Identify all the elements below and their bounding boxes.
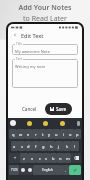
button[interactable]: Back [11, 31, 19, 39]
button[interactable]: English [33, 165, 62, 175]
staticText: m [66, 156, 70, 161]
button[interactable]: b [50, 153, 57, 163]
staticText: English [42, 168, 53, 172]
button[interactable]: h [47, 141, 55, 151]
button[interactable]: s [18, 141, 25, 151]
button[interactable]: o [67, 129, 74, 139]
staticText: g [42, 144, 45, 149]
button[interactable] [43, 121, 48, 126]
staticText: w [19, 132, 23, 137]
staticText: i [63, 132, 65, 137]
staticText: Writing my note [15, 64, 46, 69]
staticText: o [69, 132, 72, 137]
staticText: z [23, 156, 25, 161]
staticText: c [39, 156, 41, 161]
button[interactable]: r [32, 129, 39, 139]
button[interactable]: l [71, 141, 79, 151]
button[interactable]: e [25, 129, 32, 139]
staticText: u [55, 132, 58, 137]
button[interactable]: Backspace [71, 153, 81, 163]
staticText: v [45, 156, 48, 161]
button[interactable]: Shift [9, 153, 20, 163]
button[interactable]: Voice input [77, 121, 80, 126]
staticText: Add Your Notes [18, 3, 72, 13]
button[interactable]: k [63, 141, 71, 151]
button[interactable]: Title [12, 44, 78, 55]
button[interactable]: y [46, 129, 53, 139]
staticText: h [50, 144, 53, 149]
button[interactable]: t [39, 129, 46, 139]
staticText: y [48, 132, 51, 137]
staticText: r [35, 132, 37, 137]
button[interactable]: n [57, 153, 64, 163]
staticText: to Read Later [23, 14, 67, 24]
staticText: p [76, 132, 79, 137]
staticText: k [66, 144, 69, 149]
button[interactable]: c [36, 153, 43, 163]
button[interactable]: u [53, 129, 60, 139]
button[interactable] [27, 121, 32, 126]
staticText: b [52, 156, 55, 161]
staticText: s [21, 144, 23, 149]
button[interactable]: . [62, 165, 69, 175]
staticText: q [12, 132, 15, 137]
button[interactable]: f [32, 141, 39, 151]
staticText: Title [16, 42, 22, 46]
staticText: d [27, 144, 30, 149]
staticText: t [42, 132, 44, 137]
staticText: ?123 [11, 168, 18, 172]
staticText: . [65, 168, 67, 173]
button[interactable]: i [60, 129, 67, 139]
button[interactable]: j [55, 141, 63, 151]
button[interactable]: Language [26, 165, 33, 175]
button[interactable]: Settings [10, 120, 16, 126]
button[interactable]: v [43, 153, 50, 163]
button[interactable]: m [64, 153, 71, 163]
button[interactable]: z [20, 153, 28, 163]
staticText: Cancel [22, 106, 37, 112]
button[interactable]: a [11, 141, 18, 151]
button[interactable]: Emoji [19, 165, 26, 175]
button[interactable]: Cancel [18, 104, 41, 114]
button[interactable]: x [28, 153, 36, 163]
staticText: n [59, 156, 62, 161]
staticText: l [74, 144, 76, 149]
staticText: Save [56, 106, 67, 112]
staticText: My awesome Note [15, 49, 50, 54]
staticText: e [27, 132, 30, 137]
button[interactable]: g [39, 141, 47, 151]
staticText: a [13, 144, 16, 149]
button[interactable]: w [17, 129, 25, 139]
button[interactable]: p [74, 129, 81, 139]
staticText: Edit Text [21, 32, 44, 39]
button[interactable]: ?123 [9, 165, 19, 175]
staticText: j [58, 144, 60, 149]
button[interactable]: Enter [69, 165, 81, 175]
button[interactable]: Text [12, 59, 78, 88]
staticText: Text [16, 57, 22, 61]
button[interactable]: q [9, 129, 17, 139]
button[interactable]: Save [45, 103, 72, 115]
button[interactable]: d [25, 141, 32, 151]
staticText: x [31, 156, 34, 161]
staticText: f [35, 144, 37, 149]
button[interactable] [60, 121, 65, 126]
